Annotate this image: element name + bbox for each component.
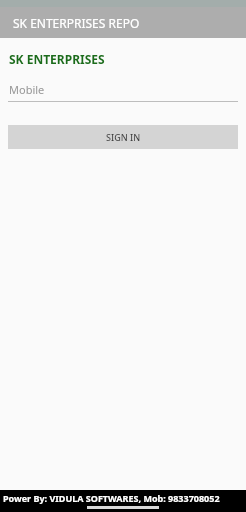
staticText: SK ENTERPRISES REPO: [13, 15, 140, 31]
staticText: Mobile: [9, 82, 45, 97]
staticText: SK ENTERPRISES: [9, 51, 105, 67]
staticText: SIGN IN: [106, 131, 141, 143]
staticText: Power By: VIDULA SOFTWARES, Mob: 9833708…: [3, 492, 220, 504]
button[interactable]: SIGN IN: [8, 125, 238, 149]
button[interactable]: Mobile: [8, 80, 238, 102]
